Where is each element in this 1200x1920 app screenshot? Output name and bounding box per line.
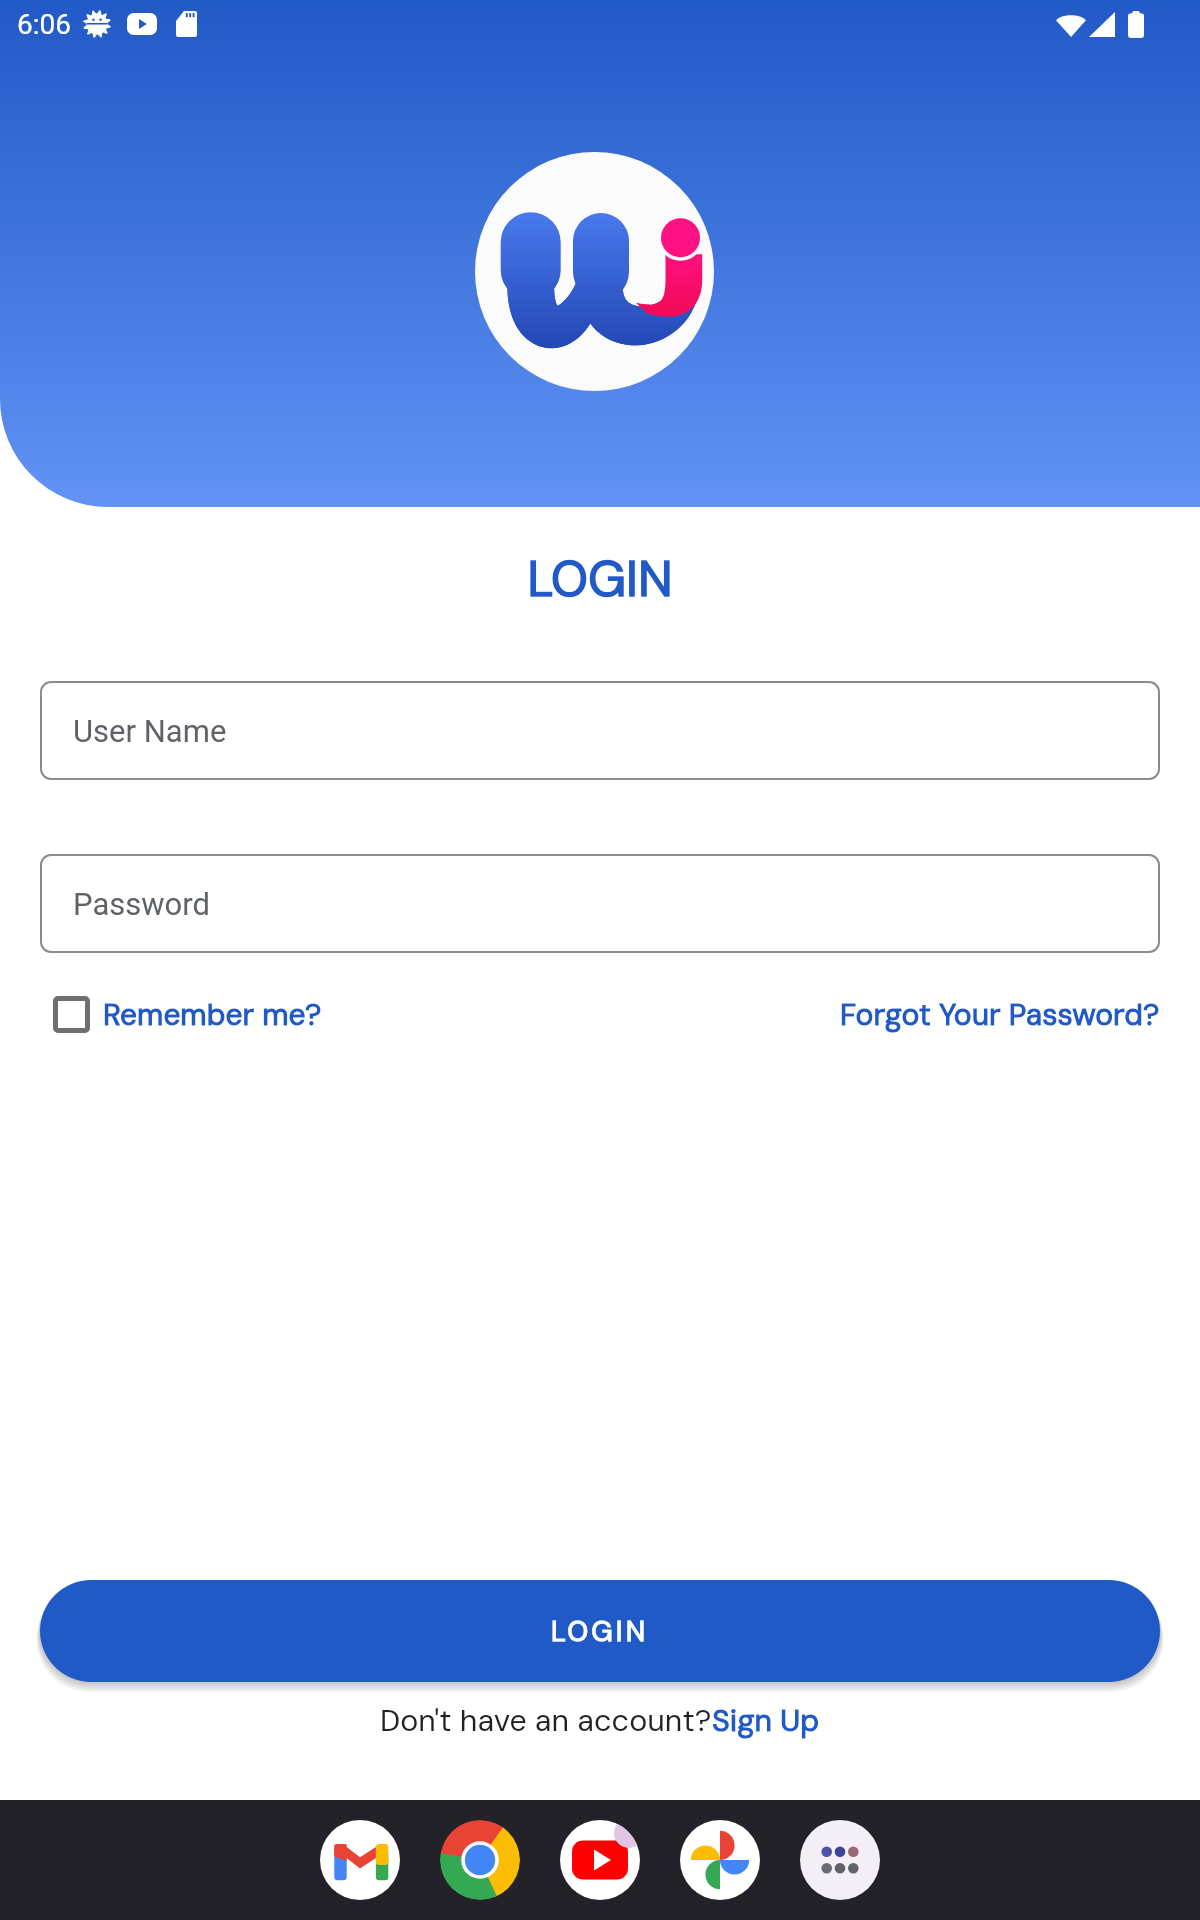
button[interactable]: Chrome: [440, 1820, 520, 1900]
staticText: Don't have an account?: [380, 1701, 712, 1741]
staticText: Forgot Your Password?: [840, 995, 1160, 1034]
staticText: Password: [73, 886, 210, 922]
button[interactable]: Remember me?: [40, 982, 322, 1046]
button[interactable]: Forgot Your Password?: [840, 982, 1160, 1046]
button[interactable]: All apps: [800, 1820, 880, 1900]
staticText: 6:06: [17, 8, 71, 41]
button[interactable]: YouTube: [560, 1820, 640, 1900]
staticText: Remember me?: [103, 995, 322, 1034]
staticText: User Name: [73, 713, 227, 749]
button[interactable]: Gmail: [320, 1820, 400, 1900]
button[interactable]: User Name: [40, 681, 1160, 780]
button[interactable]: Password: [40, 854, 1160, 953]
button[interactable]: Sign Up: [712, 1701, 820, 1741]
button[interactable]: Photos: [680, 1820, 760, 1900]
button[interactable]: LOGIN: [40, 1580, 1160, 1682]
staticText: LOGIN: [0, 546, 1200, 611]
staticText: LOGIN: [551, 1613, 649, 1649]
